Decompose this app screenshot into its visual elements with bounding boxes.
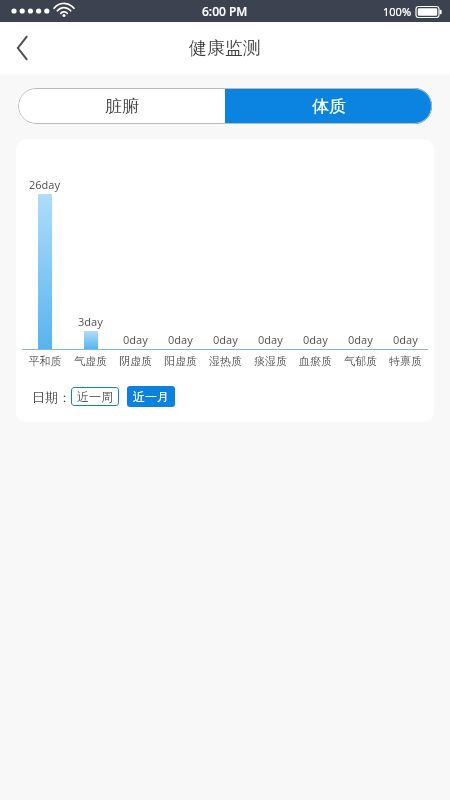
staticText: 气虚质 (68, 354, 113, 368)
staticText: 湿热质 (203, 354, 248, 368)
button[interactable]: 体质 (225, 88, 432, 124)
staticText: 阳虚质 (158, 354, 203, 368)
staticText: 痰湿质 (248, 354, 293, 368)
staticText: 3day (78, 314, 103, 329)
button[interactable]: Back (0, 25, 46, 71)
staticText: 近一月 (133, 389, 169, 404)
staticText: 健康监测 (189, 37, 261, 60)
staticText: 26day (29, 177, 61, 192)
staticText: 0day (393, 332, 418, 347)
staticText: 0day (123, 332, 148, 347)
staticText: 0day (303, 332, 328, 347)
staticText: 0day (348, 332, 373, 347)
button[interactable]: 脏腑 (18, 88, 225, 124)
button[interactable]: 近一月 (127, 386, 175, 407)
staticText: 特禀质 (383, 354, 428, 368)
staticText: 气郁质 (338, 354, 383, 368)
staticText: 0day (213, 332, 238, 347)
staticText: 阴虚质 (113, 354, 158, 368)
staticText: 100% (383, 4, 412, 19)
staticText: 血瘀质 (293, 354, 338, 368)
staticText: 0day (258, 332, 283, 347)
staticText: 平和质 (22, 354, 68, 368)
button[interactable]: 近一周 (71, 387, 119, 406)
staticText: 0day (168, 332, 193, 347)
staticText: 近一周 (77, 389, 113, 404)
staticText: 日期： (32, 389, 71, 405)
staticText: 脏腑 (105, 96, 139, 117)
staticText: 6:00 PM (202, 3, 248, 19)
staticText: 体质 (312, 96, 346, 117)
